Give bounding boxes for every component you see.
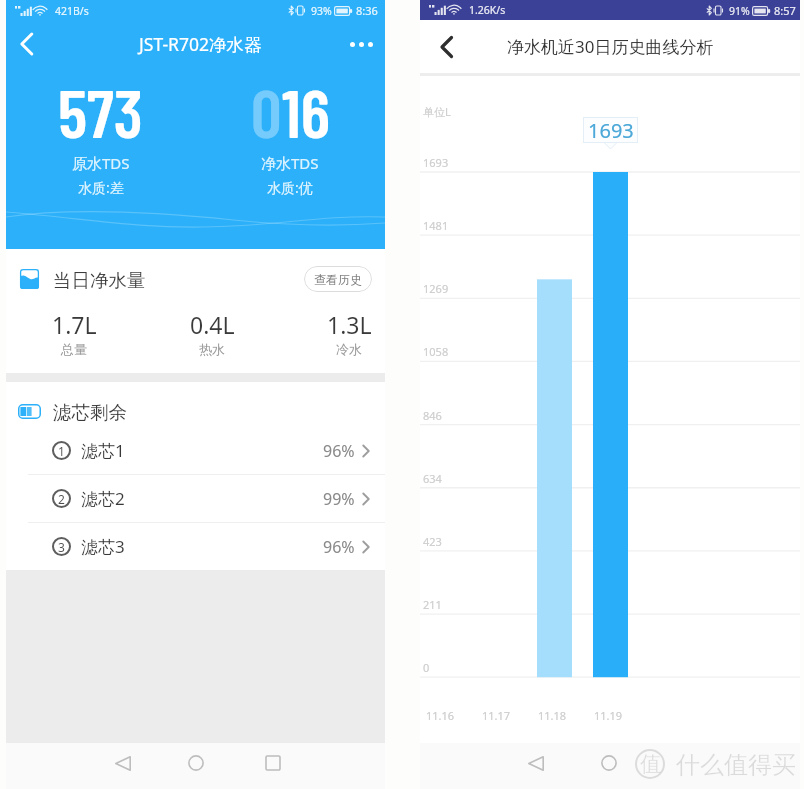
staticText: 11.19: [594, 708, 623, 723]
staticText: 1269: [423, 281, 449, 296]
staticText: 查看历史: [314, 272, 362, 287]
staticText: 846: [423, 408, 442, 423]
staticText: 1693: [588, 117, 634, 143]
staticText: 573: [58, 70, 143, 152]
button[interactable]: 查看历史: [304, 266, 372, 292]
staticText: 8:57: [774, 3, 796, 18]
button[interactable]: 2: [6, 475, 385, 522]
button[interactable]: Recents: [251, 741, 295, 785]
staticText: 99%: [323, 488, 355, 510]
staticText: 水质:优: [267, 178, 313, 197]
staticText: 0: [423, 660, 430, 675]
staticText: 11.17: [482, 708, 511, 723]
staticText: 1: [58, 443, 65, 459]
staticText: 0: [251, 70, 282, 152]
staticText: JST-R702净水器: [139, 32, 262, 56]
staticText: 16: [282, 70, 330, 152]
button[interactable]: More options: [341, 24, 381, 64]
staticText: 当日净水量: [53, 269, 146, 292]
staticText: 3: [58, 539, 65, 555]
staticText: 8:36: [356, 3, 378, 18]
staticText: 93%: [311, 4, 332, 18]
staticText: 滤芯2: [81, 487, 125, 510]
staticText: 96%: [323, 440, 355, 462]
staticText: 净水TDS: [261, 153, 319, 173]
staticText: 11.18: [538, 708, 567, 723]
staticText: 滤芯1: [81, 439, 125, 462]
staticText: 11.16: [426, 708, 455, 723]
staticText: 什么值得买: [676, 750, 796, 780]
button[interactable]: 1: [6, 427, 385, 474]
button[interactable]: Home: [174, 741, 218, 785]
button[interactable]: Home: [587, 741, 631, 785]
button[interactable]: Back: [514, 741, 558, 785]
staticText: 总量: [61, 341, 87, 357]
staticText: 水质:差: [78, 178, 124, 197]
staticText: 冷水: [336, 341, 362, 357]
button[interactable]: Back: [101, 741, 145, 785]
staticText: 0.4L: [190, 309, 235, 340]
staticText: 滤芯剩余: [53, 401, 127, 424]
staticText: 1693: [423, 155, 449, 170]
staticText: 211: [423, 597, 442, 612]
staticText: 1.7L: [52, 309, 97, 340]
button[interactable]: Back: [427, 28, 465, 66]
button[interactable]: 3: [6, 523, 385, 570]
staticText: 单位L: [423, 104, 451, 119]
staticText: 421B/s: [55, 4, 89, 18]
staticText: 净水机近30日历史曲线分析: [507, 35, 714, 58]
staticText: 滤芯3: [81, 535, 125, 558]
staticText: 634: [423, 471, 442, 486]
staticText: 1.3L: [327, 309, 372, 340]
staticText: 原水TDS: [72, 153, 130, 173]
staticText: 热水: [199, 341, 225, 357]
button[interactable]: Back: [6, 24, 46, 64]
staticText: 91%: [729, 4, 750, 18]
staticText: 96%: [323, 536, 355, 558]
staticText: 1.26K/s: [469, 3, 506, 17]
staticText: 1481: [423, 218, 449, 233]
staticText: 值: [640, 751, 661, 777]
staticText: 423: [423, 534, 442, 549]
staticText: 1058: [423, 344, 449, 359]
staticText: 2: [58, 491, 65, 507]
